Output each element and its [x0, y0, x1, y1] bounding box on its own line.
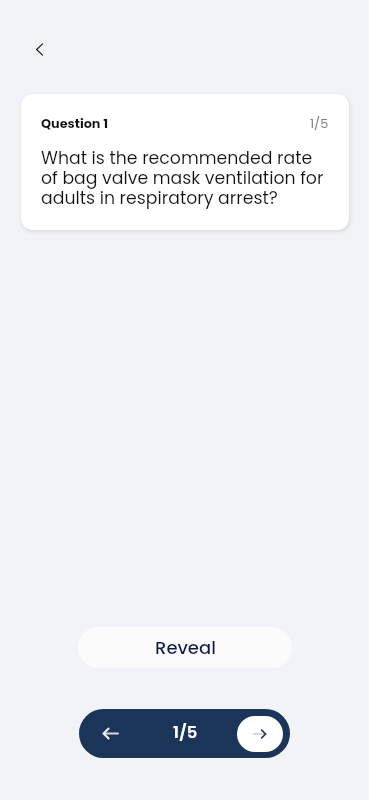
staticText: 1/5	[310, 115, 329, 133]
button[interactable]: Next question	[237, 716, 283, 752]
button[interactable]: Reveal	[78, 627, 292, 668]
staticText: 1/5	[173, 721, 198, 744]
button[interactable]: Previous question	[95, 719, 124, 748]
staticText: What is the recommended rate of bag valv…	[41, 149, 329, 209]
staticText: Reveal	[155, 635, 216, 660]
staticText: Question 1	[41, 115, 109, 133]
button[interactable]: Back	[24, 35, 53, 64]
